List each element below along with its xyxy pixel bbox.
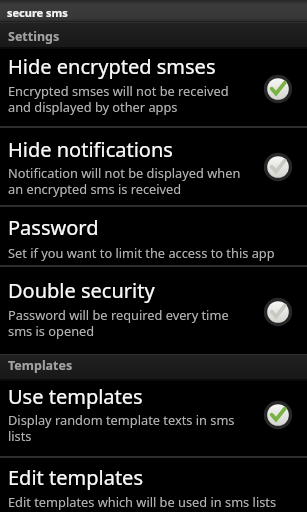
staticText: Encrypted smses will not be received and… — [8, 82, 229, 115]
button[interactable]: Edit templates — [0, 458, 307, 512]
staticText: Double security — [8, 277, 155, 304]
staticText: Password — [8, 214, 99, 241]
button[interactable]: Hide encrypted smses — [0, 49, 307, 126]
staticText: secure sms — [7, 5, 68, 20]
staticText: Settings — [8, 28, 60, 45]
button[interactable]: Hide notifications — [0, 128, 307, 205]
staticText: Hide notifications — [8, 136, 173, 163]
staticText: Use templates — [8, 383, 143, 410]
button[interactable]: Double security — [0, 267, 307, 352]
staticText: Password will be required every time sms… — [8, 306, 229, 339]
staticText: Display random template texts in sms lis… — [8, 411, 235, 444]
staticText: Templates — [8, 357, 73, 374]
button[interactable]: Use templates — [0, 380, 307, 456]
button[interactable]: Password — [0, 207, 307, 265]
staticText: Edit templates — [8, 464, 143, 491]
staticText: Edit templates which will be used in sms… — [8, 493, 277, 510]
staticText: Hide encrypted smses — [8, 53, 216, 80]
staticText: Set if you want to limit the access to t… — [8, 244, 275, 261]
staticText: Notification will not be displayed when … — [8, 164, 241, 197]
